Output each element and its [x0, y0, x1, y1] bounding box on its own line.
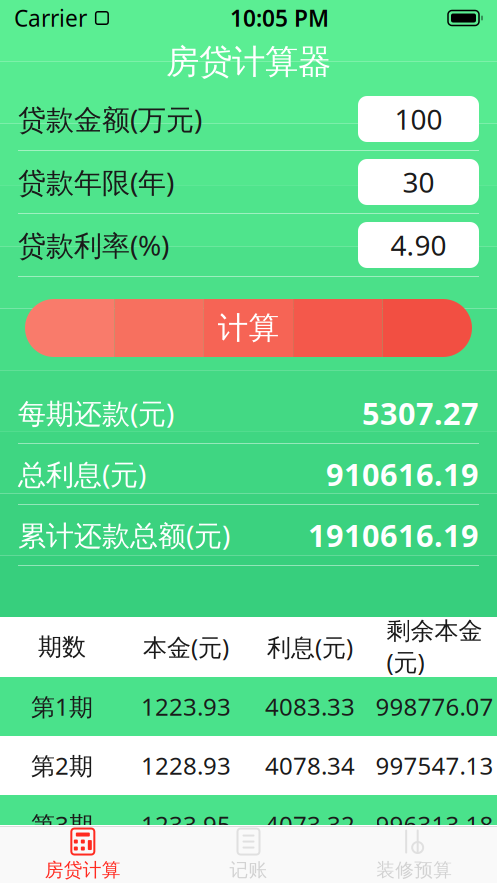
button[interactable]: 计算 — [0, 277, 497, 383]
staticText: Carrier — [14, 3, 87, 33]
staticText: 4083.33 — [265, 691, 355, 722]
staticText: 1233.95 — [141, 809, 231, 840]
staticText: 1223.93 — [141, 691, 231, 722]
staticText: 997547.13 — [375, 750, 493, 781]
staticText: 4.90 — [390, 226, 446, 264]
staticText: 1910616.19 — [308, 515, 479, 555]
staticText: 第1期 — [31, 691, 93, 722]
staticText: 996313.18 — [375, 809, 493, 840]
staticText: 记账 — [229, 858, 267, 881]
button[interactable]: 房贷计算 — [0, 827, 166, 883]
staticText: 房贷计算器 — [166, 41, 331, 82]
staticText: 本金(元) — [143, 631, 229, 663]
staticText: 每期还款(元) — [18, 394, 174, 432]
button[interactable]: 记账 — [166, 827, 331, 883]
staticText: 910616.19 — [326, 454, 479, 494]
button[interactable]: 装修预算 — [331, 827, 497, 883]
staticText: 4073.32 — [265, 809, 355, 840]
staticText: 利息(元) — [267, 631, 353, 663]
staticText: 5307.27 — [362, 393, 479, 433]
staticText: 贷款年限(年) — [18, 163, 174, 201]
staticText: 100 — [394, 100, 442, 138]
staticText: 第2期 — [31, 750, 93, 781]
staticText: 4078.34 — [265, 750, 355, 781]
staticText: 装修预算 — [376, 858, 452, 881]
staticText: 总利息(元) — [18, 455, 146, 493]
staticText: 累计还款总额(元) — [18, 516, 230, 554]
staticText: 剩余本金(元) — [386, 616, 482, 678]
staticText: 房贷计算 — [45, 858, 121, 881]
staticText: 贷款金额(万元) — [18, 100, 202, 138]
staticText: 第3期 — [31, 809, 93, 840]
staticText: 30 — [402, 163, 434, 201]
staticText: 计算 — [217, 309, 279, 347]
staticText: 贷款利率(%) — [18, 226, 169, 264]
staticText: 1228.93 — [141, 750, 231, 781]
staticText: 期数 — [38, 632, 86, 662]
staticText: 10:05 PM — [230, 3, 329, 33]
staticText: 998776.07 — [375, 691, 493, 722]
